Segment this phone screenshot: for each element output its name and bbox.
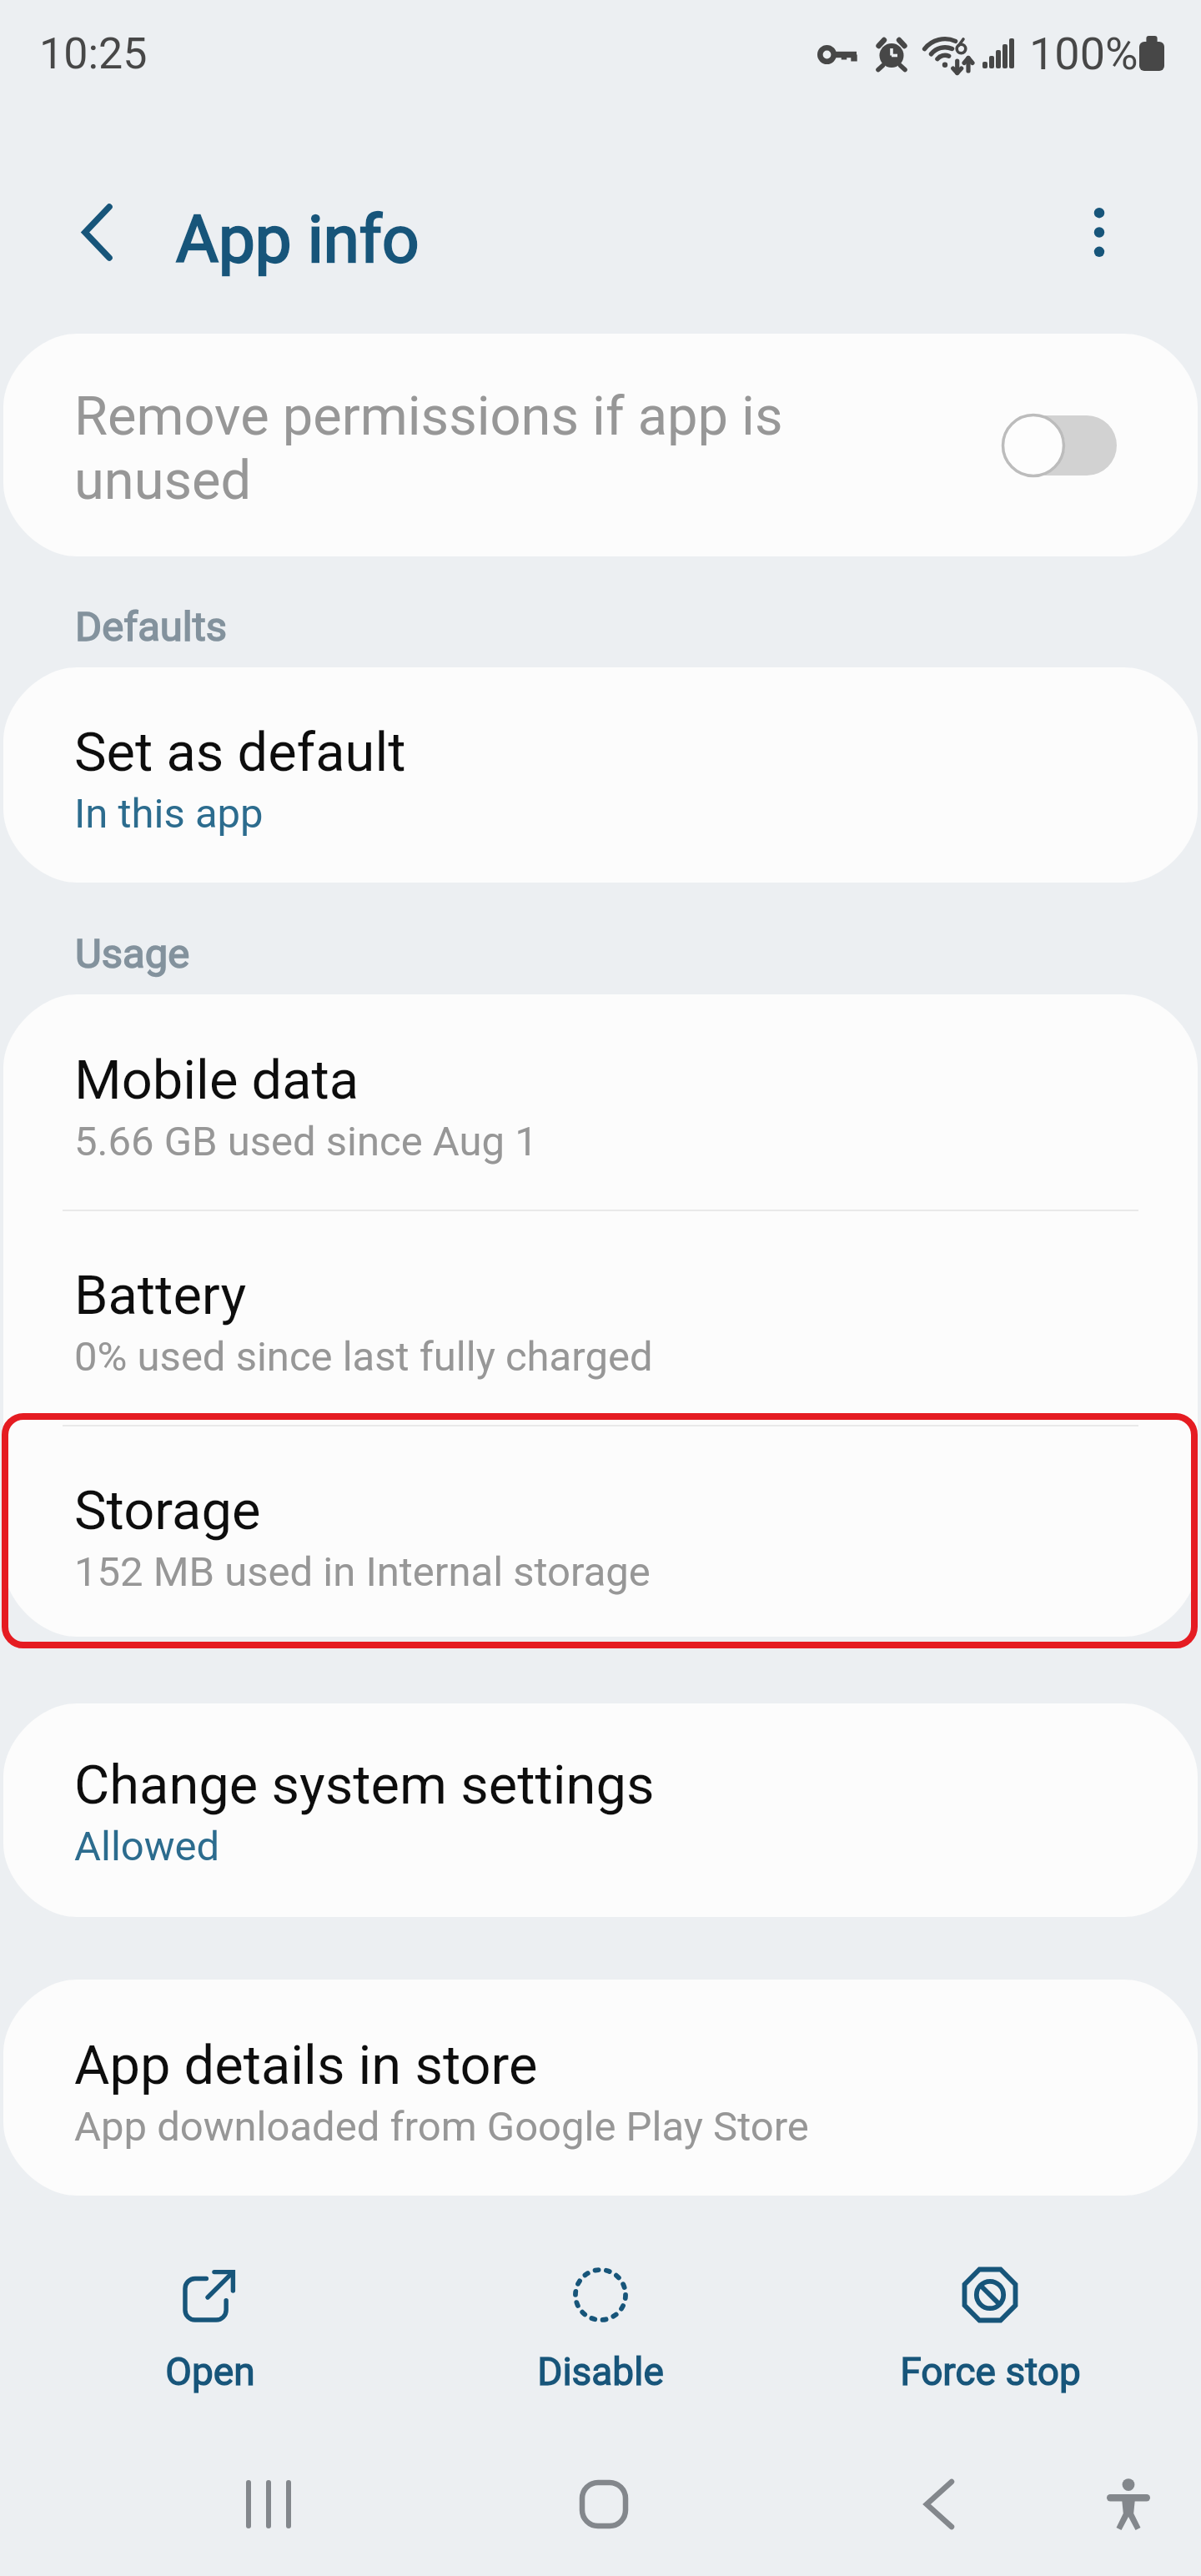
- staticText: 10:25: [39, 28, 148, 79]
- staticText: Usage: [75, 930, 190, 978]
- staticText: 0% used since last fully charged: [74, 1333, 653, 1381]
- button[interactable]: Storage: [3, 1425, 1198, 1637]
- staticText: Force stop: [900, 2349, 1081, 2394]
- staticText: 5.66 GB used since Aug 1: [74, 1118, 538, 1165]
- button[interactable]: Accessibility: [1045, 2433, 1201, 2576]
- staticText: 100%: [1029, 28, 1138, 80]
- button[interactable]: Home: [520, 2433, 687, 2576]
- button[interactable]: Mobile data: [3, 994, 1198, 1210]
- button[interactable]: Recent apps: [185, 2433, 352, 2576]
- button[interactable]: Remove permissions if app is unused: [984, 395, 1134, 496]
- button[interactable]: Force stop: [848, 2244, 1132, 2411]
- staticText: Change system settings: [74, 1753, 655, 1817]
- button[interactable]: Back: [856, 2433, 1023, 2576]
- staticText: Disable: [537, 2349, 664, 2394]
- button[interactable]: Open: [68, 2244, 352, 2411]
- button[interactable]: Battery: [3, 1210, 1198, 1425]
- staticText: Storage: [74, 1479, 261, 1542]
- button[interactable]: Navigate up: [22, 157, 172, 307]
- staticText: In this app: [74, 790, 264, 838]
- staticText: Remove permissions if app is unused: [74, 385, 783, 512]
- staticText: Battery: [74, 1264, 247, 1327]
- button[interactable]: Disable: [459, 2244, 742, 2411]
- button[interactable]: More options: [1024, 157, 1174, 307]
- staticText: Allowed: [74, 1823, 220, 1870]
- staticText: Defaults: [75, 603, 228, 651]
- staticText: App info: [176, 202, 420, 278]
- staticText: 152 MB used in Internal storage: [74, 1548, 651, 1596]
- staticText: Open: [165, 2349, 255, 2394]
- staticText: Mobile data: [74, 1049, 359, 1112]
- staticText: App details in store: [74, 2034, 538, 2097]
- staticText: Set as default: [74, 721, 406, 784]
- staticText: App downloaded from Google Play Store: [74, 2103, 809, 2151]
